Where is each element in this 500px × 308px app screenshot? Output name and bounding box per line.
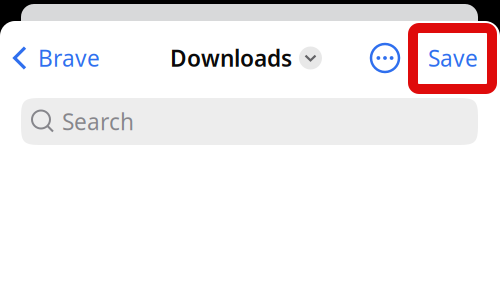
button[interactable]: Downloads <box>170 36 322 80</box>
staticText: Brave <box>38 43 100 73</box>
button[interactable]: Brave <box>0 36 130 80</box>
staticText: Save <box>428 43 478 73</box>
button[interactable]: More options <box>363 36 407 80</box>
staticText: Downloads <box>170 43 292 73</box>
staticText: Search <box>62 106 134 136</box>
button[interactable]: Search <box>21 98 478 145</box>
button[interactable]: Save <box>423 36 483 80</box>
